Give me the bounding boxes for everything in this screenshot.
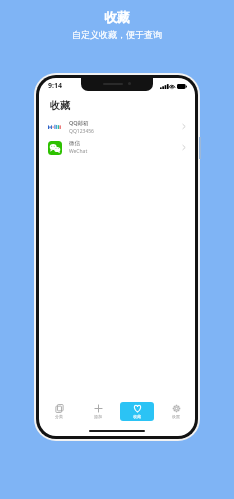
staticText: 收藏 — [104, 9, 130, 25]
staticText: QQ123456 — [69, 128, 94, 135]
button[interactable]: QQ邮箱 — [39, 116, 195, 137]
staticText: 收藏 — [133, 414, 141, 419]
button[interactable]: 设置 — [159, 402, 193, 421]
staticText: 微信 — [69, 140, 80, 147]
staticText: 分类 — [55, 414, 63, 419]
button[interactable]: 收藏 — [120, 402, 154, 421]
staticText: 设置 — [172, 414, 180, 419]
staticText: 自定义收藏，便于查询 — [72, 29, 162, 40]
button[interactable]: 分类 — [42, 402, 76, 421]
staticText: QQ邮箱 — [69, 119, 89, 127]
staticText: WeChat — [69, 148, 88, 155]
staticText: 添加 — [94, 414, 102, 419]
button[interactable]: 微信 — [39, 137, 195, 158]
staticText: 收藏 — [50, 99, 70, 112]
staticText: 9:14 — [48, 81, 62, 91]
button[interactable]: 添加 — [81, 402, 115, 421]
